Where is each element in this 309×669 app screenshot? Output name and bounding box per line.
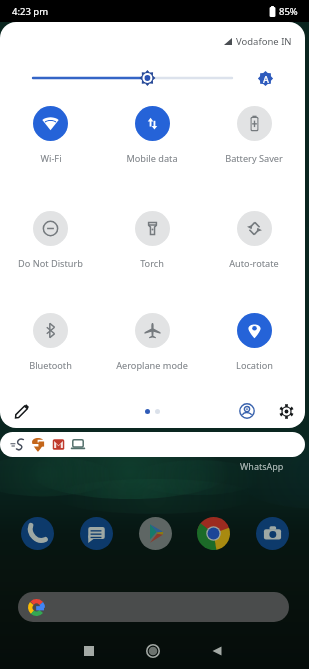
staticText: WhatsApp bbox=[240, 460, 284, 472]
button[interactable]: Wi-Fi bbox=[0, 106, 101, 165]
button[interactable]: Home bbox=[136, 635, 169, 667]
button[interactable]: Auto brightness bbox=[255, 68, 276, 89]
button[interactable]: Settings bbox=[273, 398, 299, 424]
button[interactable]: Auto-rotate bbox=[203, 211, 305, 270]
button[interactable] bbox=[18, 592, 289, 622]
button[interactable]: User profile bbox=[234, 398, 260, 424]
button[interactable]: Messages bbox=[77, 514, 115, 552]
button[interactable]: Back bbox=[200, 635, 233, 667]
staticText: Aeroplane mode bbox=[116, 359, 188, 372]
staticText: Mobile data bbox=[126, 152, 178, 165]
button[interactable] bbox=[0, 432, 305, 457]
button[interactable]: Torch bbox=[101, 211, 203, 270]
button[interactable]: Phone bbox=[18, 514, 56, 552]
button[interactable]: Play Store bbox=[136, 514, 174, 552]
staticText: 4:23 pm bbox=[12, 5, 49, 18]
staticText: Battery Saver bbox=[225, 152, 283, 165]
button[interactable]: Edit tiles bbox=[9, 398, 35, 424]
button[interactable]: Mobile data bbox=[101, 106, 203, 165]
button[interactable]: Recent apps bbox=[72, 635, 105, 667]
button[interactable]: Chrome bbox=[194, 514, 232, 552]
staticText: 85% bbox=[279, 5, 298, 18]
button[interactable]: Bluetooth bbox=[0, 313, 101, 372]
staticText: Bluetooth bbox=[29, 359, 72, 372]
button[interactable]: Aeroplane mode bbox=[101, 313, 203, 372]
staticText: A bbox=[263, 73, 269, 85]
staticText: Auto-rotate bbox=[229, 257, 279, 270]
staticText: Wi-Fi bbox=[40, 152, 62, 165]
button[interactable]: Do Not Disturb bbox=[0, 211, 101, 270]
staticText: Vodafone IN bbox=[236, 35, 292, 48]
staticText: Do Not Disturb bbox=[18, 257, 83, 270]
button[interactable]: Camera bbox=[253, 514, 291, 552]
button[interactable]: Location bbox=[203, 313, 305, 372]
staticText: Location bbox=[236, 359, 273, 372]
staticText: Torch bbox=[140, 257, 164, 270]
button[interactable]: Battery Saver bbox=[203, 106, 305, 165]
